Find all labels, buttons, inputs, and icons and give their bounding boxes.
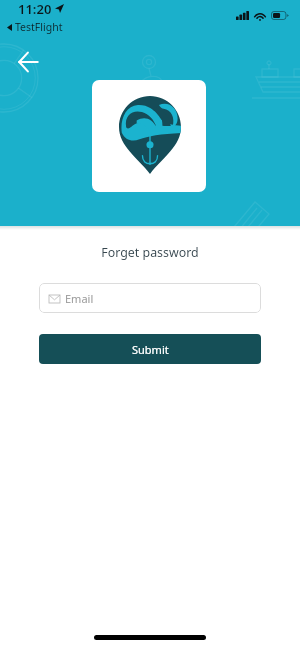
staticText: 11:20 [18, 0, 52, 18]
staticText: Email [65, 291, 94, 306]
staticText: TestFlight [15, 20, 63, 34]
button[interactable]: Submit [39, 334, 261, 364]
button[interactable]: Email [39, 283, 261, 313]
button[interactable]: Back [13, 46, 44, 77]
staticText: Forget password [0, 244, 300, 261]
staticText: Submit [132, 342, 169, 357]
